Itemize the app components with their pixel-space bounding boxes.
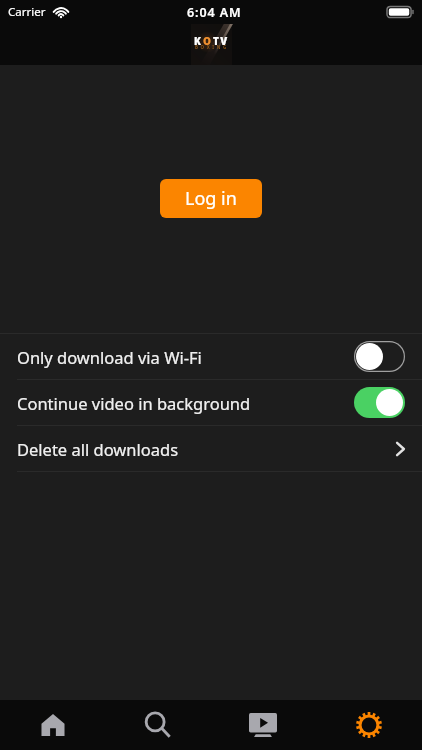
staticText: BOXING	[195, 44, 229, 50]
button[interactable]: Delete all downloads	[0, 426, 422, 471]
staticText: Delete all downloads	[17, 438, 179, 460]
button[interactable]: Log in	[160, 179, 262, 218]
staticText: TV	[213, 34, 229, 48]
button[interactable]: Home	[0, 700, 105, 750]
staticText: Log in	[185, 186, 237, 211]
button[interactable]: Disabled	[354, 341, 405, 372]
button[interactable]: Enabled	[354, 387, 405, 418]
button[interactable]: Only download via Wi-Fi	[0, 334, 422, 379]
staticText: Continue video in background	[17, 392, 251, 414]
button[interactable]: KOTV Boxing logo	[191, 24, 232, 65]
button[interactable]: Search	[105, 700, 210, 750]
staticText: Carrier	[8, 4, 46, 20]
staticText: 6:04 AM	[187, 4, 242, 21]
button[interactable]: Continue video in background	[0, 380, 422, 425]
button[interactable]: Settings	[316, 700, 422, 750]
other: Open	[383, 434, 405, 464]
staticText: O	[203, 34, 213, 48]
button[interactable]: Videos	[210, 700, 316, 750]
staticText: Only download via Wi-Fi	[17, 346, 202, 368]
staticText: K	[194, 34, 203, 48]
